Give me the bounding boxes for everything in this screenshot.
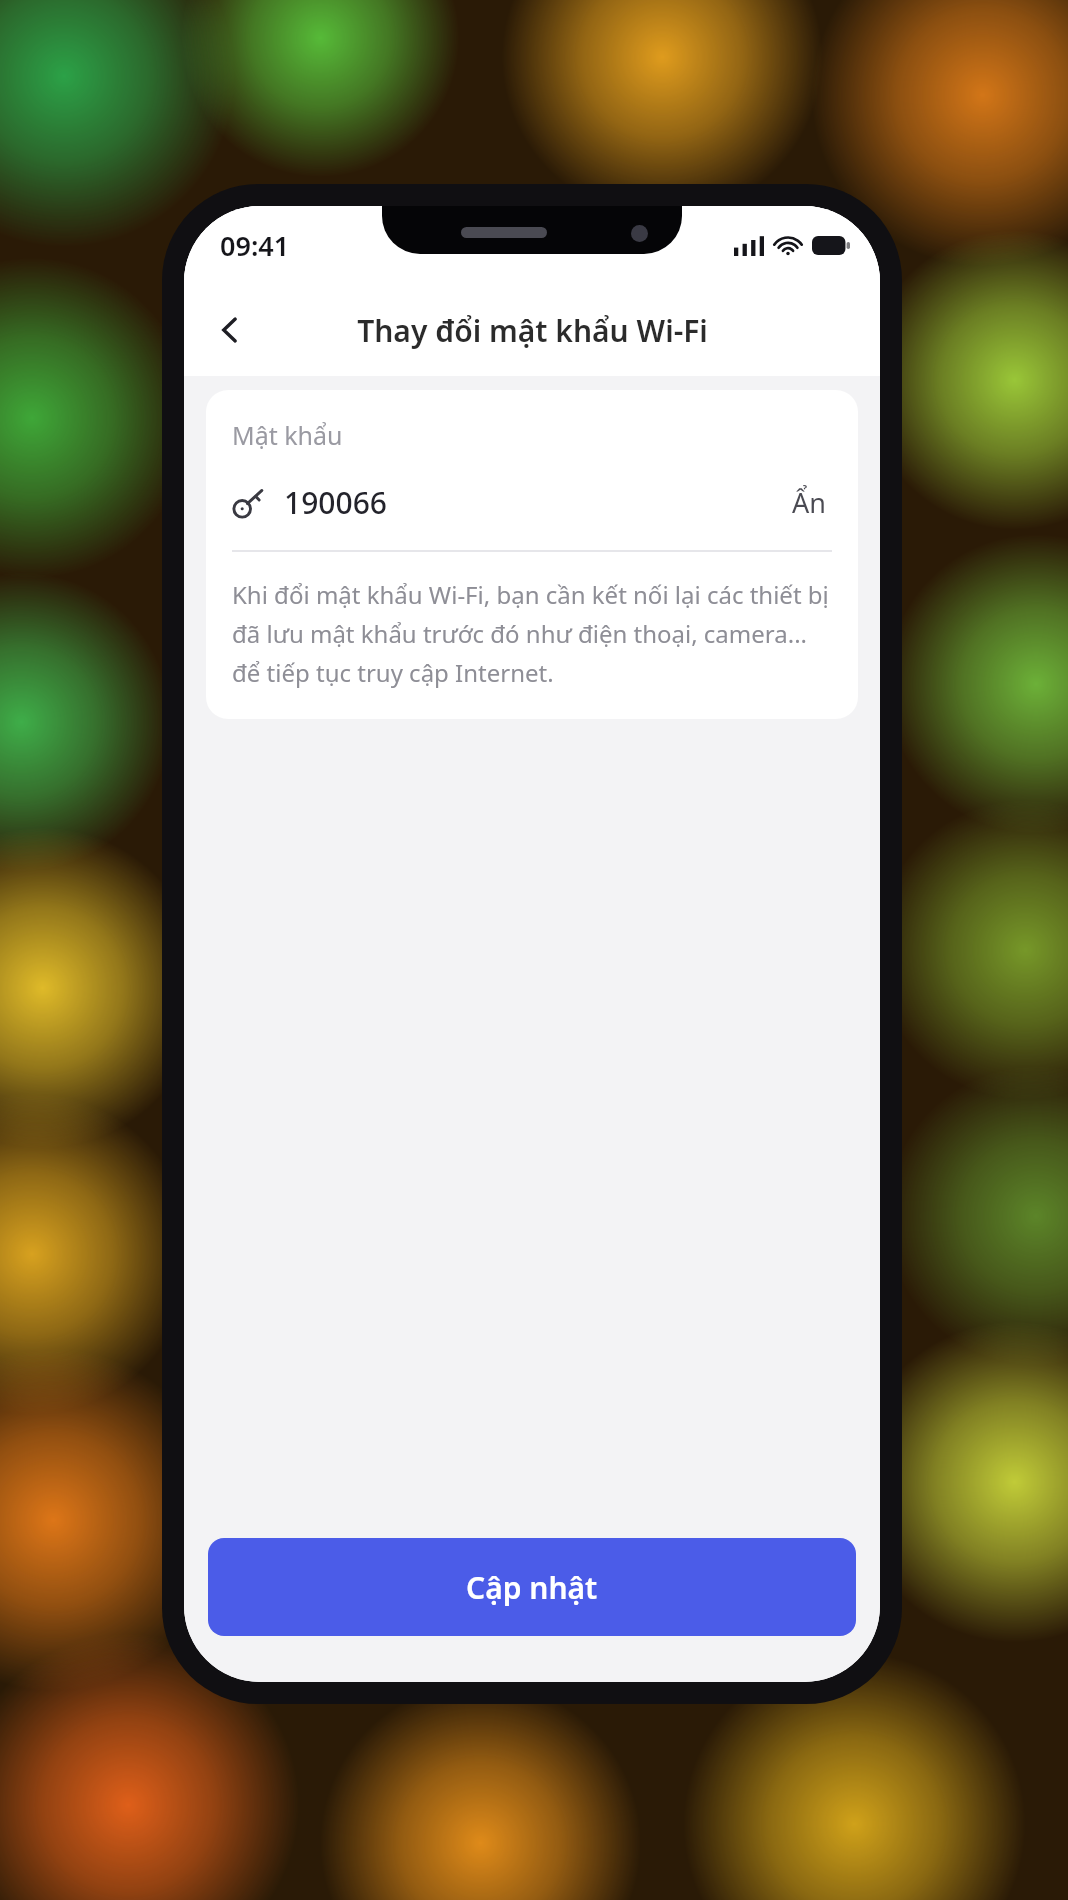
staticText: Khi đổi mật khẩu Wi-Fi, bạn cần kết nối … bbox=[232, 578, 832, 689]
button[interactable]: Ẩn bbox=[786, 478, 832, 527]
button[interactable]: Cập nhật bbox=[208, 1538, 856, 1636]
staticText: Thay đổi mật khẩu Wi-Fi bbox=[357, 310, 708, 351]
button[interactable]: Back bbox=[194, 294, 266, 366]
staticText: 190066 bbox=[284, 482, 387, 523]
staticText: 09:41 bbox=[220, 227, 290, 264]
staticText: Cập nhật bbox=[466, 1567, 598, 1608]
staticText: Ẩn bbox=[792, 484, 826, 521]
staticText: Mật khẩu bbox=[232, 418, 343, 452]
